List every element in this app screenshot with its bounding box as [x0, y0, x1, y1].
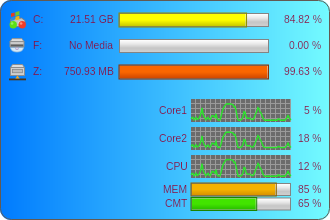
- button[interactable]: System resource monitor gadget: [0, 0, 330, 220]
